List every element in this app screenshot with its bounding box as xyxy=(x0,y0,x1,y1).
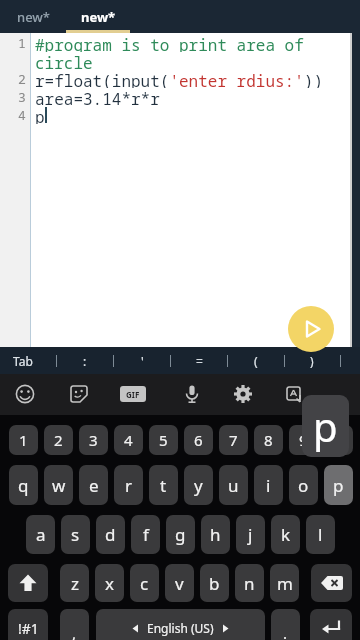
button[interactable]: b xyxy=(200,564,229,602)
button[interactable]: 5 xyxy=(149,425,178,455)
staticText: ( xyxy=(254,353,258,369)
button[interactable]: ( xyxy=(240,347,272,374)
button[interactable]: s xyxy=(61,515,90,554)
staticText: 9 xyxy=(299,430,308,450)
button[interactable] xyxy=(310,609,352,640)
staticText: b xyxy=(209,572,220,595)
button[interactable]: English (US) xyxy=(96,609,265,640)
staticText: 3 xyxy=(18,88,26,106)
button[interactable] xyxy=(288,306,334,352)
button[interactable]: !#1 xyxy=(8,609,48,640)
staticText: q xyxy=(18,474,29,497)
staticText: h xyxy=(210,523,221,546)
button[interactable]: f xyxy=(131,515,160,554)
staticText: 1 xyxy=(19,430,28,450)
button[interactable]: new* xyxy=(0,0,66,33)
button[interactable]: p xyxy=(324,465,353,505)
button[interactable]: r xyxy=(114,465,143,505)
button[interactable]: . xyxy=(271,609,300,640)
button[interactable]: ' xyxy=(126,347,158,374)
staticText: #program is to print area of xyxy=(35,34,304,52)
button[interactable]: = xyxy=(183,347,215,374)
button[interactable]: 7 xyxy=(219,425,248,455)
staticText: ' xyxy=(141,353,144,369)
staticText: 4 xyxy=(124,430,133,450)
button[interactable]: 2 xyxy=(44,425,73,455)
staticText: a xyxy=(36,523,46,546)
staticText: new* xyxy=(81,8,116,26)
button[interactable]: new* xyxy=(66,0,130,33)
staticText: y xyxy=(194,474,203,497)
button[interactable]: v xyxy=(165,564,194,602)
button[interactable]: t xyxy=(149,465,178,505)
staticText: 7 xyxy=(229,430,238,450)
button[interactable]: k xyxy=(271,515,300,554)
button[interactable]: , xyxy=(60,609,89,640)
staticText: t xyxy=(160,474,167,497)
button[interactable] xyxy=(64,379,94,409)
button[interactable]: g xyxy=(166,515,195,554)
button[interactable]: 1 xyxy=(9,425,38,455)
button[interactable]: e xyxy=(79,465,108,505)
button[interactable]: Tab xyxy=(7,347,39,374)
staticText: 0 xyxy=(334,430,343,450)
button[interactable]: y xyxy=(184,465,213,505)
staticText: . xyxy=(283,623,288,640)
staticText: x xyxy=(105,572,114,595)
staticText: ) xyxy=(310,353,314,369)
button[interactable] xyxy=(8,564,48,602)
button[interactable]: o xyxy=(289,465,318,505)
button[interactable]: 9 xyxy=(289,425,318,455)
button[interactable] xyxy=(228,379,258,409)
button[interactable]: 4 xyxy=(114,425,143,455)
button[interactable]: GIF xyxy=(120,386,146,402)
staticText: d xyxy=(105,523,116,546)
button[interactable]: 0 xyxy=(324,425,353,455)
staticText: l xyxy=(318,523,323,546)
button[interactable]: c xyxy=(130,564,159,602)
staticText: 2 xyxy=(18,70,26,88)
button[interactable]: ) xyxy=(296,347,328,374)
staticText: !#1 xyxy=(18,619,39,638)
staticText: : xyxy=(83,353,87,369)
button[interactable]: d xyxy=(96,515,125,554)
button[interactable] xyxy=(280,379,310,409)
button[interactable]: l xyxy=(306,515,335,554)
staticText: j xyxy=(248,523,253,546)
button[interactable]: m xyxy=(270,564,299,602)
staticText: v xyxy=(175,572,184,595)
staticText: circle xyxy=(35,52,93,70)
staticText: p xyxy=(35,106,45,124)
button[interactable]: 8 xyxy=(254,425,283,455)
button[interactable]: w xyxy=(44,465,73,505)
staticText: p xyxy=(313,399,338,453)
staticText: 3 xyxy=(89,430,98,450)
button[interactable]: : xyxy=(69,347,101,374)
button[interactable]: q xyxy=(9,465,38,505)
staticText: = xyxy=(196,353,203,369)
button[interactable]: n xyxy=(235,564,264,602)
staticText: new* xyxy=(17,8,50,26)
staticText: i xyxy=(266,474,271,497)
button[interactable]: x xyxy=(95,564,124,602)
staticText: e xyxy=(89,474,99,497)
button[interactable]: i xyxy=(254,465,283,505)
button[interactable] xyxy=(177,379,207,409)
staticText: p xyxy=(333,474,344,497)
staticText: o xyxy=(298,474,309,497)
staticText: 1 xyxy=(18,34,26,52)
staticText: r xyxy=(125,474,133,497)
button[interactable]: z xyxy=(60,564,89,602)
staticText: f xyxy=(143,523,149,546)
button[interactable] xyxy=(10,379,40,409)
staticText: k xyxy=(281,523,291,546)
staticText: 8 xyxy=(264,430,273,450)
button[interactable] xyxy=(311,564,352,602)
button[interactable]: 6 xyxy=(184,425,213,455)
button[interactable]: j xyxy=(236,515,265,554)
button[interactable]: 3 xyxy=(79,425,108,455)
button[interactable]: h xyxy=(201,515,230,554)
button[interactable]: u xyxy=(219,465,248,505)
button[interactable]: a xyxy=(26,515,55,554)
staticText: Tab xyxy=(13,353,33,369)
